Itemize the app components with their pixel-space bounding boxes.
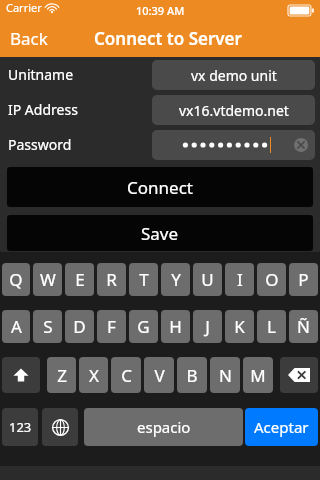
button[interactable]: F — [97, 310, 126, 343]
staticText: E — [75, 268, 85, 291]
button[interactable]: P — [289, 263, 318, 296]
button[interactable]: X — [79, 357, 108, 393]
staticText: V — [154, 364, 165, 387]
button[interactable]: I — [225, 263, 254, 296]
button[interactable]: A — [2, 310, 30, 343]
staticText: R — [106, 268, 117, 291]
staticText: L — [267, 315, 276, 338]
staticText: 123 — [9, 418, 32, 436]
button[interactable]: G — [129, 310, 158, 343]
staticText: S — [43, 315, 53, 338]
button[interactable]: 123 — [2, 408, 38, 446]
button[interactable]: espacio — [84, 408, 243, 446]
button[interactable]: L — [257, 310, 286, 343]
button[interactable]: T — [129, 263, 158, 296]
button[interactable]: Ñ — [289, 310, 318, 343]
staticText: T — [139, 268, 149, 291]
staticText: vx16.vtdemo.net — [179, 101, 289, 120]
staticText: Unitname — [8, 65, 74, 84]
button[interactable]: Aceptar — [245, 408, 318, 446]
staticText: Z — [57, 364, 67, 387]
button[interactable]: U — [193, 263, 222, 296]
button[interactable]: S — [33, 310, 62, 343]
staticText: espacio — [137, 417, 191, 437]
staticText: Ñ — [297, 315, 310, 338]
staticText: N — [219, 364, 232, 387]
button[interactable]: Connect — [7, 167, 313, 207]
staticText: Q — [9, 268, 23, 291]
staticText: IP Address — [8, 100, 78, 119]
staticText: X — [89, 364, 99, 387]
staticText: M — [250, 364, 266, 387]
staticText: K — [234, 315, 245, 338]
button[interactable]: V — [144, 357, 174, 393]
staticText: Aceptar — [254, 417, 309, 437]
button[interactable]: E — [65, 263, 94, 296]
button[interactable]: N — [210, 357, 240, 393]
staticText: J — [205, 315, 210, 338]
button[interactable]: K — [225, 310, 254, 343]
button[interactable]: M — [243, 357, 273, 393]
button[interactable]: Q — [2, 263, 30, 296]
staticText: A — [11, 315, 22, 338]
button[interactable]: Backspace — [280, 357, 318, 393]
staticText: P — [298, 268, 309, 291]
staticText: vx demo unit — [191, 66, 277, 85]
staticText: O — [265, 268, 279, 291]
staticText: Connect — [127, 176, 193, 199]
staticText: Y — [171, 268, 181, 291]
button[interactable]: Shift — [2, 357, 40, 393]
button[interactable]: Z — [47, 357, 76, 393]
button[interactable]: O — [257, 263, 286, 296]
staticText: Save — [141, 222, 179, 245]
staticText: 10:39 AM — [136, 3, 185, 18]
button[interactable] — [152, 130, 315, 160]
button[interactable]: D — [65, 310, 94, 343]
staticText: W — [40, 268, 56, 291]
staticText: G — [137, 315, 150, 338]
staticText: C — [121, 364, 132, 387]
button[interactable]: vx16.vtdemo.net — [152, 95, 315, 125]
button[interactable]: vx demo unit — [152, 60, 315, 90]
button[interactable]: Next keyboard — [42, 408, 78, 446]
button[interactable]: R — [97, 263, 126, 296]
staticText: D — [73, 315, 86, 338]
button[interactable]: Save — [7, 215, 313, 251]
button[interactable]: B — [177, 357, 207, 393]
button[interactable]: C — [111, 357, 141, 393]
staticText: Password — [8, 135, 72, 154]
button[interactable]: Y — [161, 263, 190, 296]
staticText: H — [169, 315, 182, 338]
staticText: Carrier — [6, 0, 42, 15]
staticText: Connect to Server — [94, 27, 242, 50]
staticText: I — [237, 268, 243, 291]
staticText: Back — [10, 27, 48, 50]
button[interactable]: H — [161, 310, 190, 343]
staticText: B — [186, 364, 198, 387]
button[interactable]: W — [33, 263, 62, 296]
staticText: U — [201, 268, 214, 291]
staticText: F — [107, 315, 116, 338]
button[interactable]: Back — [0, 23, 58, 54]
button[interactable]: J — [193, 310, 222, 343]
